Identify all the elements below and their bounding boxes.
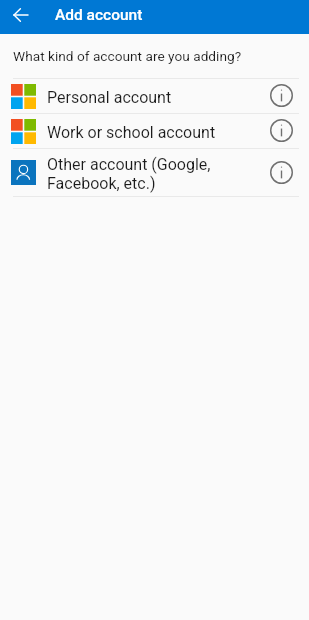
staticText: Personal account [47, 88, 266, 107]
button[interactable]: More information [266, 115, 296, 145]
button[interactable]: More information [266, 80, 296, 110]
staticText: Add account [55, 6, 143, 24]
button[interactable]: Other account (Google, Facebook, etc.) [0, 149, 309, 196]
button[interactable]: More information [266, 157, 296, 187]
button[interactable]: Personal account [0, 79, 309, 113]
staticText: What kind of account are you adding? [13, 48, 242, 64]
button[interactable]: Back [7, 1, 34, 28]
staticText: Other account (Google, Facebook, etc.) [47, 155, 266, 193]
staticText: Work or school account [47, 123, 266, 142]
button[interactable]: Work or school account [0, 114, 309, 148]
